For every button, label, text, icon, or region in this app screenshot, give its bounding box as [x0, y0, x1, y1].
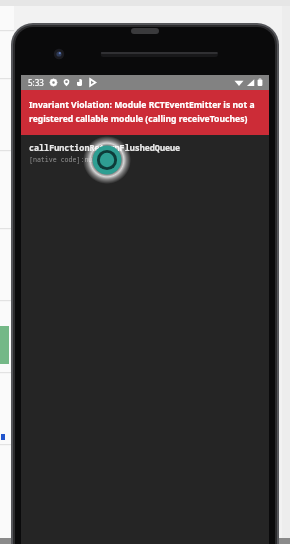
- button[interactable]: callFunctionReturnFlushedQueue: [21, 135, 269, 164]
- staticText: 5:33: [28, 77, 44, 88]
- staticText: [native code]:null: [29, 155, 101, 164]
- staticText: callFunctionReturnFlushedQueue: [29, 142, 181, 153]
- button[interactable]: Invariant Violation: Module RCTEventEmit…: [21, 90, 269, 135]
- staticText: Invariant Violation: Module RCTEventEmit…: [29, 99, 255, 111]
- staticText: registered callable module (calling rece…: [29, 113, 248, 125]
